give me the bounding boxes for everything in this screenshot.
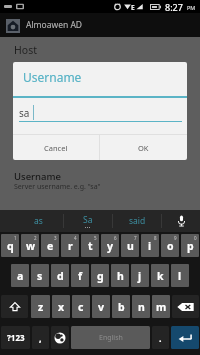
button[interactable]: e: [41, 234, 59, 257]
staticText: v: [98, 300, 104, 314]
button[interactable]: b: [112, 295, 130, 318]
button[interactable]: v: [92, 295, 110, 318]
staticText: PM: [187, 4, 196, 11]
button[interactable]: k: [151, 264, 169, 287]
staticText: Sa: [83, 214, 93, 226]
button[interactable]: x: [52, 295, 70, 318]
staticText: t: [88, 239, 93, 253]
button[interactable]: p: [181, 234, 199, 257]
button[interactable]: i: [141, 234, 159, 257]
button[interactable]: Voice input: [162, 210, 200, 232]
staticText: w: [26, 239, 35, 253]
button[interactable]: Shift: [1, 295, 28, 318]
button[interactable]: g: [91, 264, 109, 287]
staticText: Cancel: [44, 143, 68, 153]
button[interactable]: z: [31, 295, 50, 318]
button[interactable]: t: [81, 234, 99, 257]
staticText: o: [167, 239, 174, 253]
staticText: 2: [34, 235, 37, 241]
button[interactable]: o: [161, 234, 179, 257]
button[interactable]: Cancel: [13, 135, 99, 160]
staticText: 7: [134, 235, 137, 241]
staticText: b: [118, 300, 125, 314]
staticText: s: [37, 269, 43, 283]
button[interactable]: .: [152, 326, 169, 349]
button[interactable]: r: [61, 234, 79, 257]
button[interactable]: s: [31, 264, 49, 287]
staticText: h: [117, 269, 124, 283]
button[interactable]: English: [71, 326, 150, 349]
staticText: Almoawen AD: [26, 19, 83, 31]
staticText: as: [34, 215, 43, 227]
staticText: p: [187, 239, 194, 253]
staticText: d: [57, 269, 64, 283]
staticText: f: [78, 269, 83, 283]
button[interactable]: n: [132, 295, 150, 318]
button[interactable]: q: [1, 234, 19, 257]
button[interactable]: h: [111, 264, 129, 287]
button[interactable]: ?123: [1, 326, 30, 349]
staticText: 9: [174, 235, 177, 241]
staticText: 4: [74, 235, 77, 241]
staticText: 6: [114, 235, 117, 241]
button[interactable]: Change language: [51, 326, 69, 349]
staticText: ?123: [7, 332, 25, 343]
staticText: ,: [39, 332, 42, 344]
button[interactable]: y: [101, 234, 119, 257]
staticText: g: [97, 269, 104, 283]
button[interactable]: said: [113, 210, 161, 232]
staticText: 3: [54, 235, 57, 241]
staticText: q: [7, 239, 14, 253]
staticText: 1: [14, 235, 17, 241]
staticText: 8:27: [165, 1, 183, 13]
button[interactable]: f: [71, 264, 89, 287]
staticText: i: [148, 239, 152, 253]
button[interactable]: l: [171, 264, 189, 287]
staticText: Server username. e.g. "sa": [14, 182, 101, 192]
staticText: said: [129, 215, 146, 227]
button[interactable]: u: [121, 234, 139, 257]
staticText: x: [58, 300, 65, 314]
button[interactable]: m: [152, 295, 170, 318]
button[interactable]: j: [131, 264, 149, 287]
staticText: English: [99, 333, 123, 343]
button[interactable]: a: [11, 264, 29, 287]
staticText: l: [178, 269, 182, 283]
staticText: r: [68, 239, 73, 253]
staticText: 8: [154, 235, 157, 241]
staticText: n: [138, 300, 145, 314]
button[interactable]: Enter: [171, 326, 199, 349]
staticText: y: [107, 239, 113, 253]
staticText: m: [156, 300, 167, 314]
button[interactable]: as: [14, 210, 63, 232]
staticText: Host: [14, 43, 37, 57]
staticText: E: [131, 3, 135, 12]
staticText: u: [127, 239, 134, 253]
button[interactable]: w: [21, 234, 39, 257]
button[interactable]: ,: [32, 326, 49, 349]
staticText: sa: [19, 106, 30, 120]
staticText: k: [157, 269, 164, 283]
button[interactable]: OK: [100, 135, 187, 160]
button[interactable]: App icon: [6, 19, 20, 33]
staticText: .: [159, 332, 162, 344]
staticText: e: [47, 239, 54, 253]
button[interactable]: Backspace: [172, 295, 199, 318]
staticText: OK: [138, 143, 149, 153]
button[interactable]: Sa: [64, 210, 112, 232]
staticText: 0: [194, 235, 197, 241]
button[interactable]: c: [72, 295, 90, 318]
staticText: Username: [14, 170, 61, 183]
staticText: j: [138, 269, 142, 283]
staticText: z: [38, 300, 44, 314]
staticText: 5: [94, 235, 97, 241]
staticText: c: [78, 300, 84, 314]
staticText: Username: [23, 69, 82, 85]
staticText: a: [17, 269, 24, 283]
button[interactable]: d: [51, 264, 69, 287]
